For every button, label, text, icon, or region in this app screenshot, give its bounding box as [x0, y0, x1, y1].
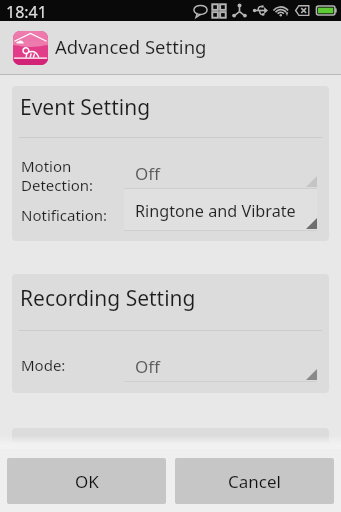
- staticText: Recording Setting: [20, 284, 196, 313]
- staticText: Mode:: [21, 355, 124, 375]
- other: App icon: [13, 31, 48, 65]
- staticText: Off: [135, 162, 160, 185]
- button[interactable]: Off: [124, 340, 317, 382]
- staticText: Advanced Setting: [55, 34, 207, 59]
- staticText: Motion Detection:: [21, 156, 124, 195]
- staticText: Ringtone and Vibrate: [135, 200, 296, 222]
- button[interactable]: App icon: [0, 21, 341, 74]
- button[interactable]: Off: [124, 147, 317, 189]
- button[interactable]: Ringtone and Vibrate: [124, 189, 317, 231]
- staticText: Notification:: [21, 205, 124, 225]
- staticText: Event Setting: [20, 93, 151, 122]
- staticText: OK: [75, 470, 99, 493]
- button[interactable]: OK: [7, 458, 166, 504]
- staticText: 18:41: [6, 1, 47, 22]
- staticText: Off: [135, 355, 160, 378]
- button[interactable]: Cancel: [175, 458, 334, 504]
- staticText: Cancel: [228, 470, 281, 493]
